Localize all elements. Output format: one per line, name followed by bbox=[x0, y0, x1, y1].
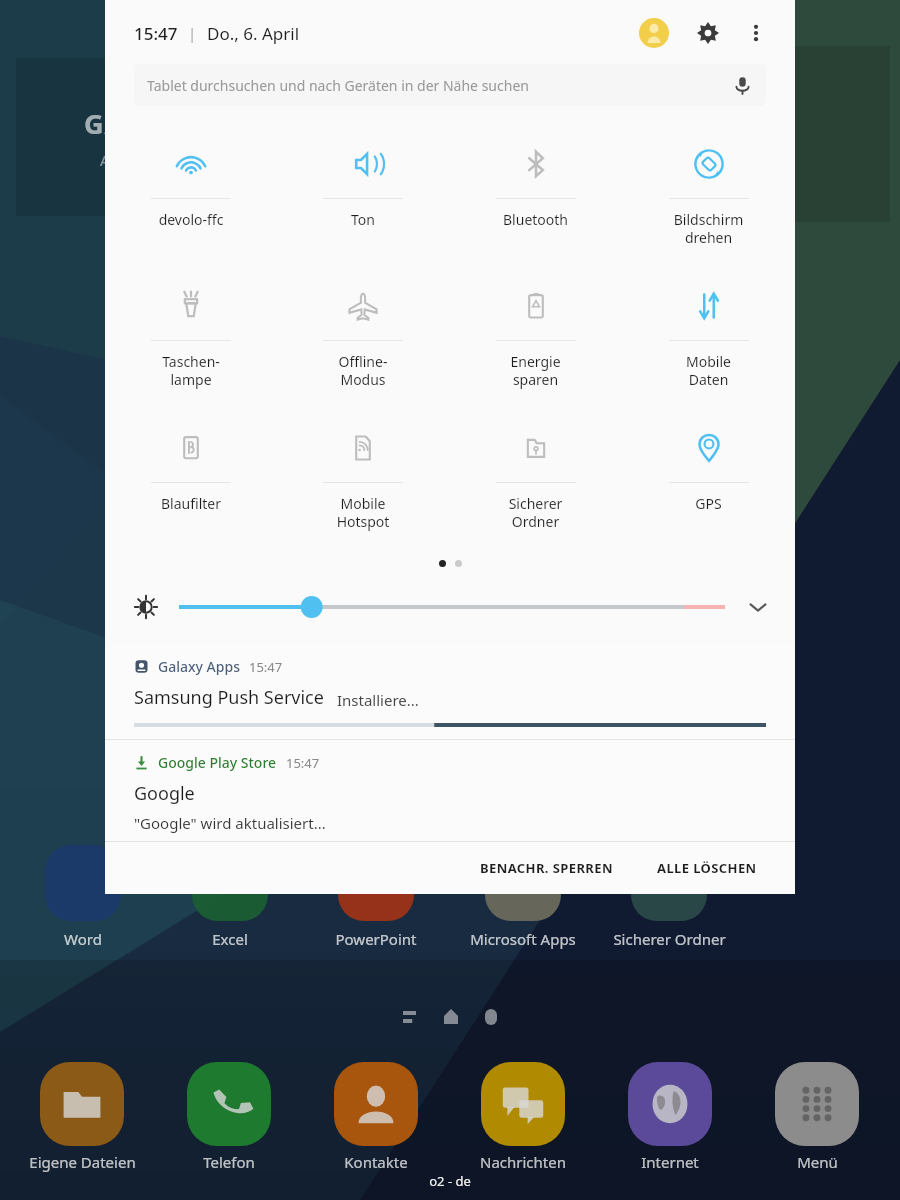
staticText: devolo-ffc bbox=[105, 210, 277, 229]
staticText: Google bbox=[134, 781, 195, 806]
button[interactable]: GPS bbox=[622, 412, 795, 554]
button[interactable]: Weitere Optionen bbox=[739, 16, 773, 50]
button[interactable]: Word bbox=[13, 845, 153, 949]
button[interactable]: Telefon bbox=[157, 1062, 301, 1172]
button[interactable]: Mobile Hotspot bbox=[277, 412, 449, 554]
staticText: Tablet durchsuchen und nach Geräten in d… bbox=[147, 76, 529, 95]
button[interactable]: Benutzer bbox=[639, 18, 669, 48]
button[interactable]: Taschen- lampe bbox=[105, 270, 277, 412]
button[interactable]: Internet bbox=[598, 1062, 742, 1172]
button[interactable]: Blaufilter bbox=[105, 412, 277, 554]
button[interactable]: Home bbox=[440, 1006, 462, 1028]
staticText: GALAXY bbox=[84, 105, 198, 142]
button[interactable]: Back bbox=[480, 1006, 502, 1028]
staticText: Galaxy Apps bbox=[158, 657, 240, 676]
staticText: Excel bbox=[212, 929, 248, 949]
button[interactable]: Automatische Helligkeit bbox=[129, 590, 163, 624]
button[interactable]: Microsoft Apps bbox=[453, 845, 593, 949]
button[interactable]: Mehr anzeigen bbox=[741, 590, 775, 624]
staticText: Telefon bbox=[203, 1152, 255, 1172]
button[interactable]: Energie sparen bbox=[449, 270, 622, 412]
staticText: Google Play Store bbox=[158, 753, 277, 772]
staticText: PowerPoint bbox=[335, 929, 417, 949]
staticText: Samsung Push Service bbox=[134, 685, 324, 710]
staticText: Internet bbox=[641, 1152, 699, 1172]
staticText: 15:47 bbox=[249, 658, 283, 676]
button[interactable]: Google Play Store bbox=[105, 740, 795, 841]
staticText: 15:47 bbox=[286, 754, 320, 772]
staticText: Energie sparen bbox=[449, 352, 622, 389]
staticText: Ausgewählt bbox=[100, 150, 183, 170]
staticText: Mobile Daten bbox=[622, 352, 795, 389]
staticText: Taschen- lampe bbox=[105, 352, 277, 389]
button[interactable]: Eigene Dateien bbox=[10, 1062, 154, 1172]
staticText: 15:47 bbox=[134, 22, 178, 45]
staticText: | bbox=[188, 23, 197, 43]
staticText: Microsoft Apps bbox=[470, 929, 576, 949]
button[interactable]: Mobile Daten bbox=[622, 270, 795, 412]
button[interactable]: ALLE LÖSCHEN bbox=[647, 851, 767, 885]
staticText: Ton bbox=[277, 210, 449, 229]
button[interactable]: Galaxy Apps bbox=[105, 645, 795, 739]
staticText: Installiere... bbox=[337, 690, 419, 710]
button[interactable] bbox=[179, 594, 725, 620]
button[interactable]: Nachrichten bbox=[451, 1062, 595, 1172]
staticText: Offline- Modus bbox=[277, 352, 449, 389]
button[interactable]: Einstellungen bbox=[691, 16, 725, 50]
staticText: Mobile Hotspot bbox=[277, 494, 449, 531]
staticText: Nachrichten bbox=[480, 1152, 566, 1172]
button[interactable]: Recents bbox=[400, 1006, 422, 1028]
staticText: Eigene Dateien bbox=[29, 1152, 136, 1172]
button[interactable]: BENACHR. SPERREN bbox=[470, 851, 623, 885]
button[interactable]: Kontakte bbox=[304, 1062, 448, 1172]
staticText: BENACHR. SPERREN bbox=[480, 859, 613, 877]
button[interactable]: Excel bbox=[160, 845, 300, 949]
staticText: Do., 6. April bbox=[207, 22, 300, 45]
staticText: Word bbox=[64, 929, 102, 949]
staticText: o2 - de bbox=[390, 1172, 510, 1190]
button[interactable]: Bildschirm drehen bbox=[622, 128, 795, 270]
button[interactable]: Sicherer Ordner bbox=[449, 412, 622, 554]
button[interactable]: Tablet durchsuchen und nach Geräten in d… bbox=[134, 64, 766, 106]
staticText: GPS bbox=[622, 494, 795, 513]
button[interactable]: Offline- Modus bbox=[277, 270, 449, 412]
staticText: Bildschirm drehen bbox=[622, 210, 795, 247]
staticText: Sicherer Ordner bbox=[449, 494, 622, 531]
button[interactable]: Bluetooth bbox=[449, 128, 622, 270]
button[interactable]: Ton bbox=[277, 128, 449, 270]
staticText: Menü bbox=[797, 1152, 838, 1172]
button[interactable]: Menü bbox=[745, 1062, 889, 1172]
button[interactable]: PowerPoint bbox=[306, 845, 446, 949]
other: Spracheingabe bbox=[726, 69, 758, 101]
button[interactable]: Sicherer Ordner bbox=[599, 845, 739, 949]
staticText: Blaufilter bbox=[105, 494, 277, 513]
staticText: Kontakte bbox=[344, 1152, 408, 1172]
staticText: "Google" wird aktualisiert... bbox=[134, 813, 326, 833]
staticText: ALLE LÖSCHEN bbox=[657, 859, 757, 877]
staticText: Sicherer Ordner bbox=[613, 929, 726, 949]
button[interactable]: devolo-ffc bbox=[105, 128, 277, 270]
staticText: Bluetooth bbox=[449, 210, 622, 229]
